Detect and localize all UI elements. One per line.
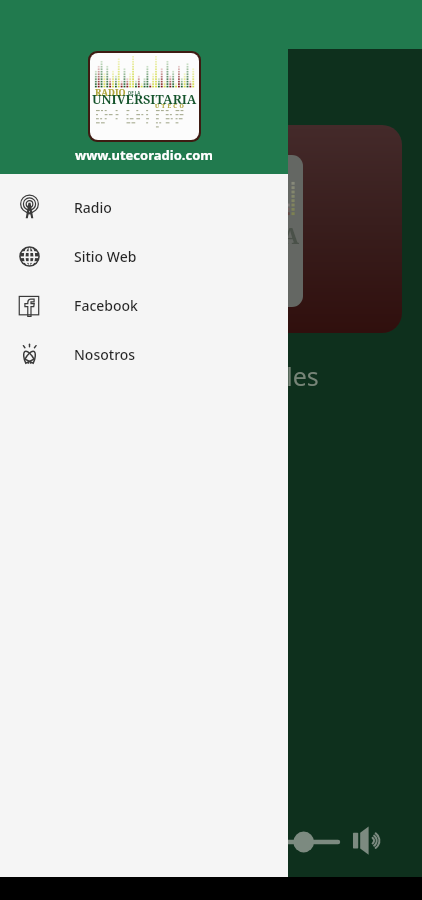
staticText: Sitio Web [74,247,137,266]
staticText: Nosotros [74,345,136,364]
button[interactable]: Volume [347,819,391,863]
staticText: Radio [74,198,112,217]
other: Facebook [18,294,41,317]
staticText: UNIVERSITARIA [119,220,300,250]
button[interactable]: Sitio Web [0,232,288,281]
staticText: UTECO [155,102,187,109]
button[interactable]: RADIO [0,0,288,174]
staticText: UNIVERSITARIA [92,90,197,107]
staticText: www.utecoradio.com [75,146,213,164]
button[interactable]: Nosotros [0,330,288,379]
other: Radio [18,196,41,219]
other: Sitio Web [18,245,41,268]
staticText: Noticias Musicales [103,359,319,393]
other: Nosotros [18,343,41,366]
button[interactable]: Facebook [0,281,288,330]
button[interactable]: Radio [0,183,288,232]
staticText: Facebook [74,296,138,315]
staticText: RADIO [95,86,126,98]
staticText: DE LA [128,90,141,96]
